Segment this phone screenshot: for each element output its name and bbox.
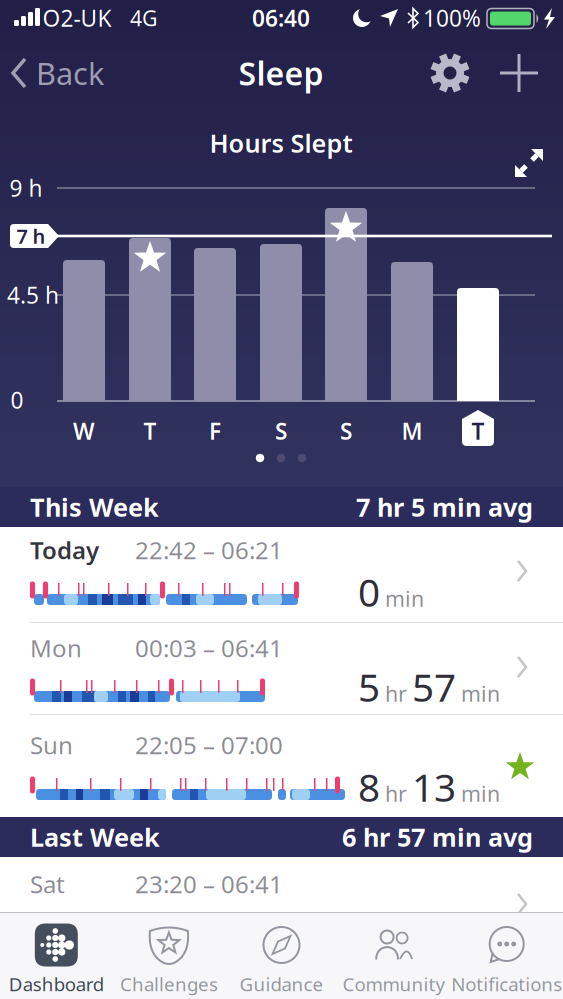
staticText: S (340, 416, 352, 446)
staticText: Dashboard (9, 972, 104, 996)
staticText: 13 (412, 761, 456, 812)
button[interactable]: Mon (0, 623, 563, 715)
staticText: 4G (130, 4, 158, 32)
button[interactable]: Challenges (113, 912, 225, 999)
staticText: Notifications (451, 972, 562, 996)
staticText: 57 (412, 661, 456, 712)
button[interactable]: Dashboard (0, 912, 113, 999)
staticText: 06:40 (252, 3, 310, 33)
staticText: Mon (30, 632, 82, 664)
button[interactable]: Add (497, 51, 541, 95)
staticText: Sun (30, 729, 73, 761)
staticText: This Week (30, 490, 159, 524)
staticText: Sleep (238, 52, 323, 94)
staticText: Hours Slept (209, 126, 352, 160)
staticText: hr (385, 679, 407, 707)
staticText: 7 hr 5 min avg (356, 490, 533, 524)
staticText: 8 (358, 761, 380, 812)
staticText: 22:42 – 06:21 (135, 534, 283, 566)
button[interactable]: Sun (0, 715, 563, 817)
staticText: hr (385, 779, 407, 807)
staticText: W (73, 416, 95, 446)
staticText: min (461, 779, 500, 807)
staticText: O2-UK (42, 3, 111, 33)
staticText: T (471, 416, 484, 446)
staticText: min (461, 679, 500, 707)
staticText: 6 hr 57 min avg (342, 820, 533, 854)
staticText: Sat (30, 868, 65, 900)
staticText: T (143, 416, 156, 446)
button[interactable]: Back (10, 51, 104, 95)
staticText: min (385, 584, 424, 612)
staticText: 00:03 – 06:41 (135, 632, 283, 664)
staticText: 22:05 – 07:00 (135, 729, 283, 761)
staticText: 4.5 h (7, 280, 59, 310)
staticText: Guidance (239, 972, 323, 996)
staticText: 5 (358, 661, 380, 712)
button[interactable]: Settings (428, 51, 472, 95)
button[interactable]: Notifications (450, 912, 563, 999)
staticText: F (209, 416, 221, 446)
staticText: 0 (358, 566, 380, 617)
staticText: Today (30, 534, 99, 566)
button[interactable]: Sat (0, 857, 563, 912)
staticText: Community (343, 972, 446, 996)
button[interactable]: Today (0, 527, 563, 623)
staticText: 100% (423, 3, 481, 33)
button[interactable]: Expand chart (509, 143, 549, 183)
staticText: 9 h (9, 173, 42, 203)
staticText: S (275, 416, 287, 446)
staticText: Back (36, 53, 104, 93)
button[interactable]: Community (338, 912, 450, 999)
staticText: Last Week (30, 820, 160, 854)
staticText: M (401, 416, 422, 446)
staticText: Challenges (120, 972, 218, 996)
button[interactable]: Guidance (225, 912, 338, 999)
staticText: 23:20 – 06:41 (135, 868, 283, 900)
staticText: 0 (10, 385, 23, 415)
staticText: 7 h (16, 223, 45, 249)
